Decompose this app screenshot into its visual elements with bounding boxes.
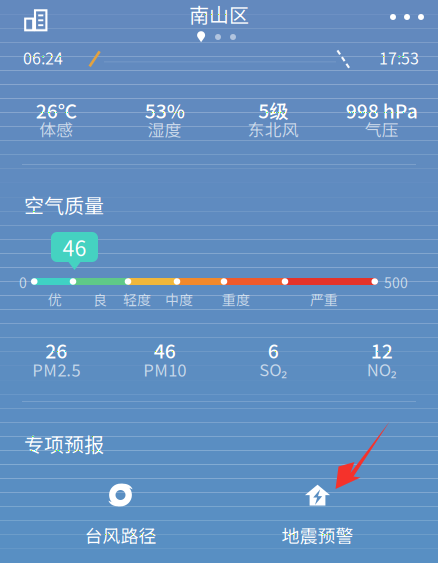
staticText: NO₂ <box>367 357 397 381</box>
staticText: 南山区 <box>189 0 249 28</box>
staticText: 严重 <box>310 289 338 309</box>
staticText: 12 <box>371 336 393 364</box>
staticText: 6 <box>268 336 279 364</box>
staticText: 0 <box>19 272 27 292</box>
staticText: 26 <box>45 336 67 364</box>
staticText: 东北风 <box>248 117 299 141</box>
staticText: 体感 <box>39 117 73 141</box>
button[interactable]: More options <box>377 0 437 34</box>
button[interactable]: 南山区 <box>159 1 279 27</box>
staticText: 5级 <box>258 96 288 124</box>
staticText: 地震预警 <box>281 522 353 548</box>
button[interactable]: 地震预警 <box>219 472 416 550</box>
staticText: 500 <box>384 272 408 292</box>
staticText: 53% <box>145 96 185 124</box>
staticText: PM2.5 <box>32 357 80 381</box>
staticText: 湿度 <box>148 117 182 141</box>
staticText: 重度 <box>222 289 250 309</box>
staticText: 中度 <box>165 289 193 309</box>
staticText: 46 <box>62 232 86 262</box>
staticText: SO₂ <box>259 357 287 381</box>
staticText: 998 hPa <box>346 96 418 124</box>
staticText: 气压 <box>365 117 399 141</box>
staticText: 台风路径 <box>84 522 156 548</box>
staticText: 17:53 <box>379 46 419 69</box>
staticText: 轻度 <box>123 289 151 309</box>
button[interactable]: Cities <box>12 0 60 41</box>
staticText: 空气质量 <box>24 190 104 219</box>
staticText: 46 <box>154 336 176 364</box>
button[interactable]: 台风路径 <box>22 472 219 550</box>
staticText: 优 <box>48 289 62 309</box>
staticText: 26℃ <box>36 96 77 124</box>
staticText: 良 <box>93 289 107 309</box>
staticText: PM10 <box>143 357 186 381</box>
staticText: 06:24 <box>23 46 63 69</box>
staticText: 专项预报 <box>24 429 104 458</box>
